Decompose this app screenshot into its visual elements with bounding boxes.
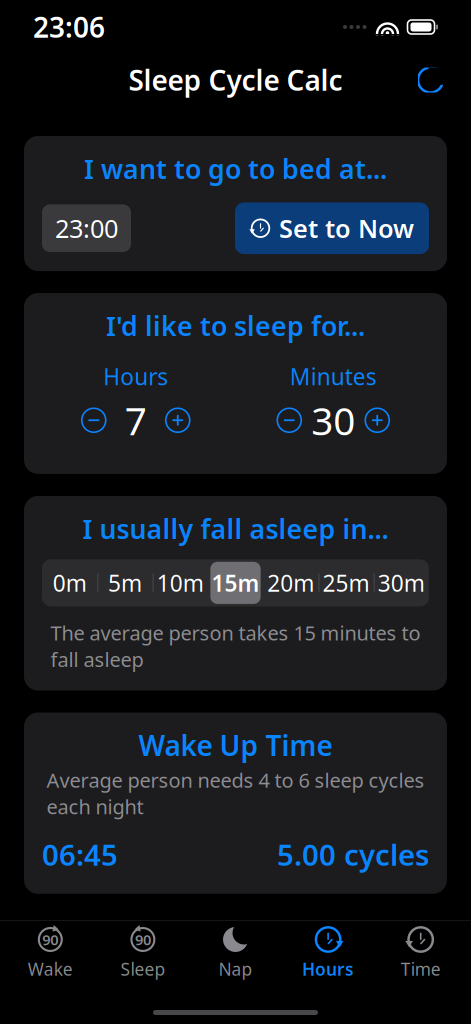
button[interactable]: Decrease Hours: [82, 408, 106, 432]
button[interactable]: 23:00: [42, 204, 131, 252]
staticText: Average person needs 4 to 6 sleep cycles…: [46, 767, 424, 820]
button[interactable]: 90: [4, 918, 97, 984]
button[interactable]: Set to Now: [235, 202, 429, 254]
staticText: 5.00 cycles: [277, 835, 429, 874]
staticText: Set to Now: [279, 211, 414, 245]
staticText: I usually fall asleep in...: [82, 511, 388, 546]
staticText: 15m: [211, 568, 259, 598]
staticText: Time: [401, 957, 441, 980]
staticText: Hours: [302, 957, 354, 980]
button[interactable]: 15m: [208, 559, 263, 606]
button[interactable]: 90: [97, 918, 189, 984]
button[interactable]: Increase Hours: [166, 408, 190, 432]
staticText: 23:00: [55, 211, 118, 245]
button[interactable]: 20m: [263, 559, 318, 606]
staticText: 5m: [108, 568, 142, 598]
button[interactable]: Decrease Minutes: [277, 408, 301, 432]
button[interactable]: Dark mode: [410, 59, 451, 100]
button[interactable]: Hours: [282, 918, 374, 984]
staticText: Minutes: [290, 361, 377, 392]
staticText: 7: [125, 395, 147, 446]
staticText: Nap: [218, 957, 252, 980]
staticText: I'd like to sleep for...: [106, 308, 365, 343]
button[interactable]: Time: [374, 918, 467, 984]
staticText: 30: [311, 395, 355, 446]
button[interactable]: 0m: [42, 559, 97, 606]
staticText: 25m: [323, 568, 370, 598]
staticText: I want to go to bed at...: [84, 151, 387, 186]
staticText: 0m: [53, 568, 87, 598]
staticText: Sleep: [120, 957, 165, 980]
button[interactable]: Increase Minutes: [365, 408, 389, 432]
staticText: 30m: [378, 568, 425, 598]
staticText: Hours: [103, 361, 168, 392]
button[interactable]: 25m: [318, 559, 374, 606]
button[interactable]: 5m: [97, 559, 153, 606]
staticText: 23:06: [33, 8, 105, 46]
staticText: 06:45: [42, 835, 118, 874]
button[interactable]: Nap: [189, 918, 282, 984]
staticText: 90: [135, 930, 151, 949]
staticText: Wake Up Time: [138, 727, 332, 764]
button[interactable]: 10m: [153, 559, 208, 606]
button[interactable]: 30m: [374, 559, 429, 606]
staticText: 20m: [267, 568, 314, 598]
staticText: 90: [42, 930, 58, 949]
staticText: Wake: [28, 957, 73, 980]
staticText: Sleep Cycle Calc: [128, 61, 342, 99]
staticText: 10m: [157, 568, 204, 598]
staticText: The average person takes 15 minutes to f…: [50, 619, 420, 672]
